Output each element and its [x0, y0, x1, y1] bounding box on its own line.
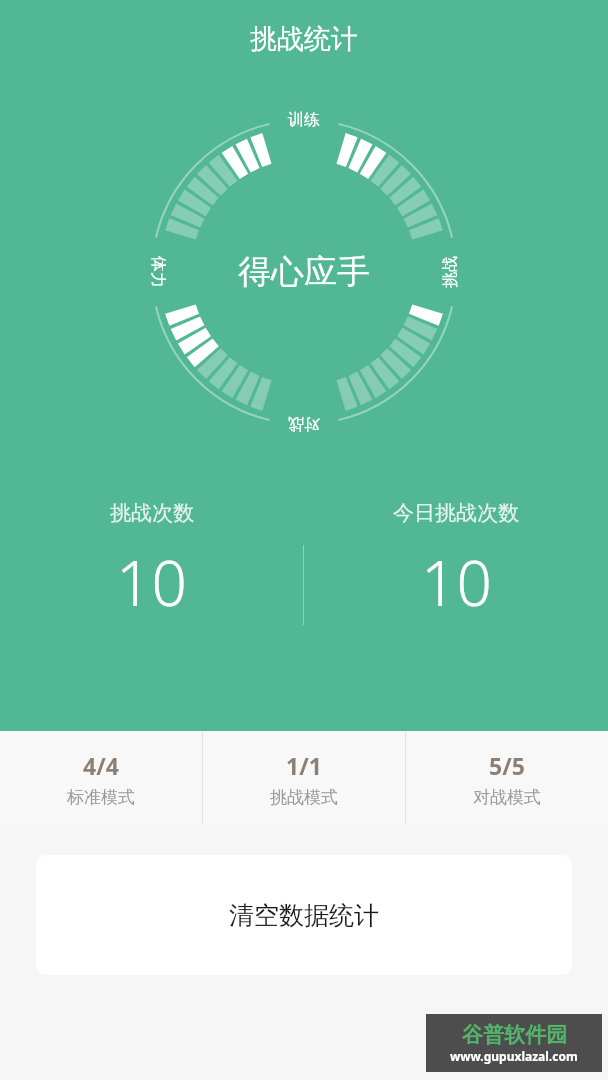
staticText: 清空数据统计 [229, 900, 379, 931]
staticText: 挑战 [440, 256, 460, 288]
staticText: 对战 [288, 414, 320, 434]
staticText: 1/1 [286, 750, 322, 781]
staticText: www.gupuxlazal.com [450, 1048, 578, 1064]
staticText: 10 [421, 540, 492, 624]
staticText: 对战模式 [473, 787, 541, 808]
button[interactable]: 清空数据统计 [36, 855, 572, 975]
staticText: 训练 [288, 110, 320, 130]
button[interactable]: 4/4 [0, 731, 202, 826]
staticText: 5/5 [489, 750, 525, 781]
staticText: 今日挑战次数 [393, 500, 519, 526]
staticText: 得心应手 [238, 251, 370, 293]
staticText: 4/4 [83, 750, 119, 781]
button[interactable]: 5/5 [406, 731, 608, 826]
staticText: 标准模式 [67, 787, 135, 808]
staticText: 10 [116, 540, 187, 624]
staticText: 挑战模式 [270, 787, 338, 808]
staticText: 谷普软件园 [462, 1022, 567, 1048]
staticText: 挑战统计 [250, 22, 358, 56]
staticText: 体力 [148, 256, 168, 288]
staticText: 挑战次数 [110, 500, 194, 526]
button[interactable]: 1/1 [203, 731, 405, 826]
